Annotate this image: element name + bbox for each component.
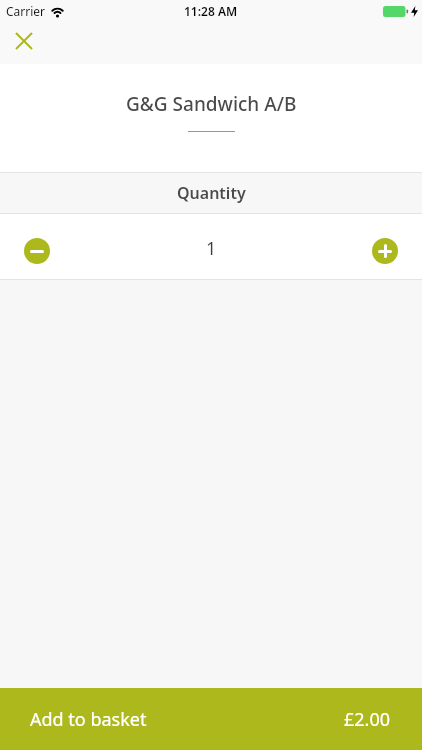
staticText: Quantity <box>177 182 246 204</box>
staticText: 1 <box>206 236 217 261</box>
staticText: 11:28 AM <box>184 3 238 19</box>
staticText: Add to basket <box>30 707 147 732</box>
staticText: Carrier <box>6 3 46 19</box>
button[interactable] <box>372 238 398 264</box>
button[interactable]: Add to basket <box>0 688 422 750</box>
button[interactable] <box>24 238 50 264</box>
staticText: £2.00 <box>344 707 391 732</box>
staticText: G&G Sandwich A/B <box>126 91 297 117</box>
button[interactable] <box>10 27 37 54</box>
